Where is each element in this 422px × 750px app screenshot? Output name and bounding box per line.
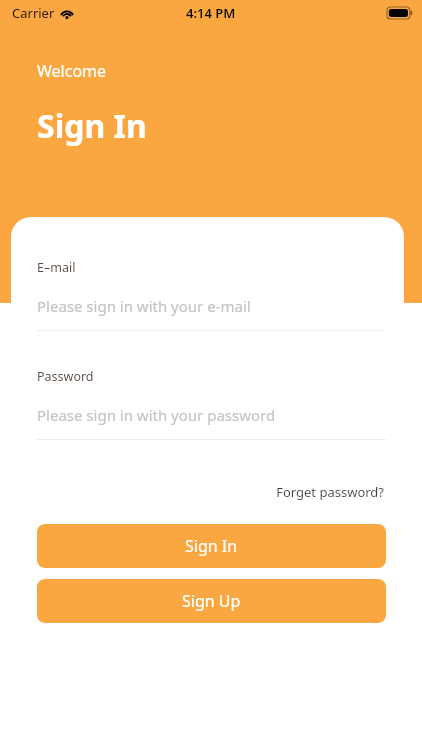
staticText: Password [37,368,94,385]
button[interactable]: Please sign in with your e-mail [37,296,386,331]
staticText: E–mail [37,259,76,276]
staticText: Welcome [37,60,107,82]
button[interactable]: Sign In [37,524,386,568]
staticText: Sign Up [182,590,241,612]
button[interactable]: Please sign in with your password [37,405,386,440]
staticText: 4:14 PM [186,4,236,22]
staticText: Please sign in with your password [37,405,276,425]
other: Battery full [387,7,413,19]
staticText: Carrier [12,4,55,22]
button[interactable]: Forget password? [274,479,386,505]
other: Wi-Fi signal [60,8,74,19]
staticText: Sign In [37,104,147,148]
button[interactable]: Sign Up [37,579,386,623]
staticText: Sign In [185,535,238,557]
staticText: Please sign in with your e-mail [37,296,251,316]
